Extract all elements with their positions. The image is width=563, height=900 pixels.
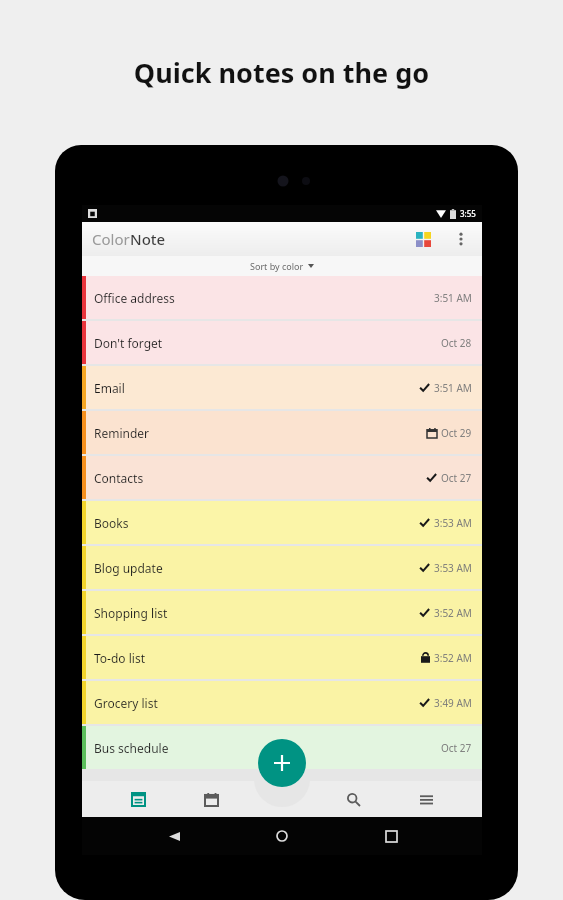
button[interactable]: Calendar [195,783,227,815]
button[interactable]: Bus schedule [82,726,482,769]
button[interactable]: Books [82,501,482,544]
staticText: 3:52 AM [434,651,472,665]
staticText: Sort by color [250,260,304,272]
button[interactable]: Search [337,783,369,815]
button[interactable]: Home [265,819,299,853]
button[interactable]: Menu [410,783,442,815]
staticText: Office address [94,290,434,306]
button[interactable]: More options [446,224,476,254]
staticText: Blog update [94,560,419,576]
button[interactable]: Blog update [82,546,482,589]
staticText: 3:53 AM [434,561,472,575]
button[interactable]: Sort by color [82,256,482,276]
staticText: To-do list [94,650,421,666]
staticText: Shopping list [94,605,419,621]
staticText: Color [92,229,130,249]
staticText: Email [94,380,419,396]
staticText: 3:55 [460,208,476,219]
button[interactable]: To-do list [82,636,482,679]
staticText: Note [130,229,166,249]
staticText: 3:52 AM [434,606,472,620]
button[interactable]: Shopping list [82,591,482,634]
button[interactable]: Email [82,366,482,409]
staticText: Don't forget [94,335,441,351]
staticText: Oct 28 [441,336,472,350]
button[interactable]: Office address [82,276,482,319]
staticText: 3:53 AM [434,516,472,530]
button[interactable]: Don't forget [82,321,482,364]
staticText: 3:51 AM [434,291,472,305]
staticText: Oct 27 [441,741,472,755]
staticText: Books [94,515,419,531]
staticText: Oct 27 [441,471,472,485]
staticText: Quick notes on the go [0,54,563,91]
staticText: Bus schedule [94,740,441,756]
button[interactable]: Notes [122,783,154,815]
staticText: 3:49 AM [434,696,472,710]
button[interactable]: Reminder [82,411,482,454]
button[interactable]: Color filter [408,224,438,254]
button[interactable]: Recents [374,819,408,853]
staticText: Contacts [94,470,426,486]
staticText: Reminder [94,425,427,441]
button[interactable]: Back [157,819,191,853]
staticText: Oct 29 [441,426,472,440]
staticText: 3:51 AM [434,381,472,395]
staticText: Grocery list [94,695,419,711]
button[interactable]: New note [258,739,306,787]
button[interactable]: Contacts [82,456,482,499]
button[interactable]: Grocery list [82,681,482,724]
